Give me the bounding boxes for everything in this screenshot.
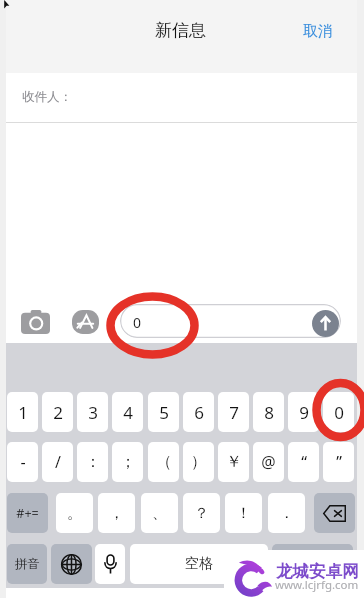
button[interactable]: ？ — [183, 493, 220, 533]
staticText: 新信息 — [155, 20, 206, 41]
button[interactable]: 9 — [288, 392, 319, 432]
staticText: 取消 — [303, 22, 333, 41]
staticText: - — [20, 451, 26, 473]
staticText: 5 — [159, 401, 169, 424]
button[interactable]: ） — [183, 442, 214, 482]
button[interactable]: ￥ — [218, 442, 249, 482]
button[interactable]: Backspace — [314, 493, 355, 533]
button[interactable]: 0 — [323, 392, 354, 432]
staticText: 1 — [18, 401, 28, 424]
button[interactable]: 取消 — [293, 13, 343, 50]
button[interactable]: Take photo — [18, 307, 51, 336]
staticText: 9 — [299, 401, 309, 424]
staticText: 龙城安卓网 — [276, 561, 359, 582]
staticText: 7 — [229, 401, 239, 424]
button[interactable]: 0 — [120, 304, 341, 338]
staticText: 6 — [194, 401, 204, 424]
button[interactable]: “ — [288, 442, 319, 482]
staticText: #+= — [16, 505, 39, 522]
button[interactable]: ． — [268, 493, 305, 533]
staticText: ． — [279, 504, 294, 523]
button[interactable]: ” — [323, 442, 354, 482]
staticText: 4 — [123, 401, 133, 424]
button[interactable]: （ — [148, 442, 179, 482]
staticText: 。 — [67, 504, 82, 523]
button[interactable]: @ — [253, 442, 284, 482]
staticText: 空格 — [185, 555, 213, 573]
button[interactable]: 空格 — [130, 544, 268, 584]
button[interactable]: Send — [312, 310, 339, 337]
button[interactable]: ！ — [225, 493, 262, 533]
button[interactable]: Voice input — [95, 544, 125, 584]
button[interactable]: 拼音 — [7, 544, 47, 584]
staticText: 收件人： — [22, 89, 72, 105]
button[interactable]: 4 — [112, 392, 143, 432]
staticText: www.lcjrfg.com — [275, 577, 359, 593]
staticText: 0 — [133, 313, 142, 332]
button[interactable]: iMessage apps — [70, 307, 101, 336]
staticText: @ — [261, 451, 276, 473]
staticText: “ — [301, 451, 307, 473]
button[interactable]: / — [42, 442, 73, 482]
staticText: ？ — [194, 504, 209, 523]
staticText: 拼音 — [15, 556, 40, 572]
staticText: / — [55, 451, 61, 473]
button[interactable]: 3 — [77, 392, 108, 432]
button[interactable] — [272, 544, 353, 584]
button[interactable]: 、 — [141, 493, 178, 533]
staticText: （ — [156, 452, 172, 472]
staticText: 2 — [53, 401, 63, 424]
staticText: ； — [120, 452, 136, 472]
button[interactable]: 。 — [56, 493, 93, 533]
staticText: 3 — [88, 401, 98, 424]
staticText: ” — [336, 451, 342, 473]
staticText: 0 — [334, 401, 344, 424]
button[interactable]: 7 — [218, 392, 249, 432]
staticText: ， — [109, 504, 124, 523]
button[interactable]: ； — [112, 442, 143, 482]
button[interactable]: ： — [77, 442, 108, 482]
button[interactable]: 2 — [42, 392, 73, 432]
button[interactable]: - — [7, 442, 38, 482]
button[interactable]: 1 — [7, 392, 38, 432]
button[interactable]: 8 — [253, 392, 284, 432]
staticText: ） — [191, 452, 207, 472]
button[interactable]: 5 — [148, 392, 179, 432]
button[interactable]: Switch keyboard — [51, 544, 92, 584]
staticText: ！ — [236, 504, 251, 523]
button[interactable]: #+= — [7, 493, 48, 533]
staticText: ￥ — [226, 452, 242, 472]
staticText: ： — [85, 452, 101, 472]
staticText: 8 — [264, 401, 274, 424]
staticText: 、 — [152, 504, 167, 523]
button[interactable]: 收件人： — [6, 73, 357, 123]
button[interactable]: ， — [98, 493, 135, 533]
button[interactable]: 6 — [183, 392, 214, 432]
